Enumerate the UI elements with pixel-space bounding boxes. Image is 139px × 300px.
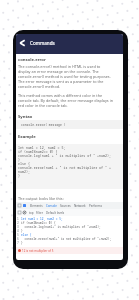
staticText: Default levels — [46, 211, 65, 215]
staticText: } — [21, 241, 23, 245]
staticText: if (num1%num2== 0) { — [21, 221, 56, 225]
staticText: Sources — [60, 204, 71, 208]
staticText: Example — [18, 134, 36, 140]
staticText: let num1 = 12, num2 = 5; — [21, 217, 63, 221]
staticText: } — [18, 157, 20, 161]
staticText: This method comes with a different color… — [18, 93, 113, 108]
staticText: 6 — [17, 237, 21, 241]
staticText: Network — [74, 204, 86, 208]
staticText: let num1 = 12, num2 = 5; — [18, 145, 66, 149]
staticText: Console — [46, 204, 57, 208]
staticText: 12 is not multiplier of 5 — [22, 249, 54, 253]
staticText: num2); — [18, 169, 30, 173]
staticText: Commands — [30, 40, 55, 46]
button[interactable]: Back — [17, 38, 27, 48]
staticText: Elements — [30, 204, 43, 208]
button[interactable] — [16, 34, 123, 54]
staticText: console.error — [18, 57, 46, 63]
staticText: Filter — [36, 211, 43, 215]
staticText: else { — [21, 233, 32, 237]
staticText: console.error(num1 + " is not multiplier… — [18, 165, 111, 169]
staticText: Performa — [89, 204, 102, 208]
staticText: if (num1%num2== 0) { — [18, 149, 58, 153]
staticText: 4 — [17, 229, 21, 233]
staticText: 5 — [17, 233, 21, 237]
staticText: 2 — [17, 221, 21, 225]
staticText: console.log(num1+" is multiplies of "+nu… — [21, 225, 101, 229]
staticText: console.log(num1 + " is multiplies of " … — [18, 153, 111, 157]
staticText: 1 — [17, 217, 21, 221]
staticText: Syntax — [18, 114, 33, 120]
staticText: else { — [18, 161, 30, 165]
staticText: console.error( message ) — [21, 123, 66, 127]
staticText: } — [21, 229, 23, 233]
staticText: } — [18, 173, 20, 177]
staticText: console.error(num1+" is not multiplier o… — [21, 237, 112, 241]
staticText: 3 — [17, 225, 21, 229]
staticText: The output looks like this: — [18, 196, 64, 201]
staticText: top — [29, 211, 34, 215]
staticText: 7 — [17, 241, 21, 245]
staticText: The console.error() method in HTML is us… — [18, 64, 113, 89]
